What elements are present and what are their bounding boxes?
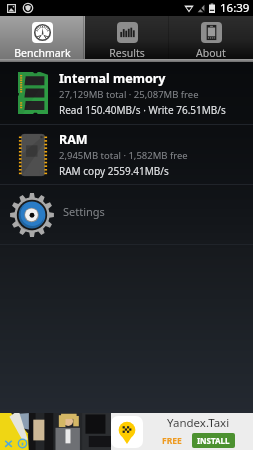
staticText: Results: [109, 46, 145, 59]
staticText: Settings: [63, 204, 105, 219]
button[interactable]: About: [169, 16, 253, 59]
other: Close ad: [3, 438, 14, 449]
button[interactable]: Settings: [0, 185, 253, 244]
staticText: Benchmark: [14, 46, 71, 59]
button[interactable]: INSTALL: [192, 433, 235, 448]
staticText: Internal memory: [59, 70, 166, 87]
other: Ad info: [17, 438, 28, 449]
staticText: RAM copy 2559.41MB/s: [59, 164, 169, 178]
staticText: 2,945MB total · 1,582MB free: [59, 149, 188, 162]
button[interactable]: Results: [85, 16, 169, 59]
staticText: RAM: [59, 131, 88, 148]
staticText: About: [196, 46, 226, 59]
staticText: INSTALL: [197, 435, 230, 446]
staticText: 16:39: [220, 0, 250, 16]
staticText: Read 150.40MB/s · Write 76.51MB/s: [59, 103, 226, 117]
button[interactable]: Internal memory: [0, 62, 253, 124]
button[interactable]: RAM: [0, 125, 253, 184]
staticText: Yandex.Taxi: [167, 415, 230, 431]
button[interactable]: Benchmark: [0, 16, 85, 59]
staticText: 27,129MB total · 25,087MB free: [59, 88, 199, 101]
staticText: FREE: [162, 435, 182, 447]
